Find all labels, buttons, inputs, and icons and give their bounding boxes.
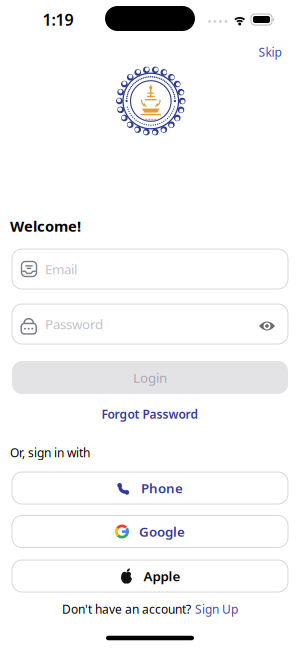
staticText: Apple xyxy=(143,567,180,585)
button[interactable]: Skip xyxy=(248,41,292,63)
staticText: Sign Up xyxy=(195,601,238,617)
staticText: Login xyxy=(133,369,167,386)
button[interactable]: Apple xyxy=(12,560,288,592)
button[interactable]: Phone xyxy=(12,472,288,504)
staticText: Password xyxy=(45,315,103,333)
staticText: Skip xyxy=(258,44,281,60)
staticText: Or, sign in with xyxy=(10,444,90,460)
button[interactable]: Show password xyxy=(255,314,279,338)
staticText: Don't have an account? xyxy=(62,601,191,617)
button[interactable]: Forgot Password xyxy=(101,404,198,424)
staticText: Email xyxy=(45,260,77,278)
staticText: Forgot Password xyxy=(101,406,198,422)
staticText: 1:19 xyxy=(42,9,73,30)
button[interactable]: Google xyxy=(12,515,288,547)
staticText: Welcome! xyxy=(10,216,81,236)
staticText: Google xyxy=(139,523,185,540)
staticText: Phone xyxy=(141,479,183,497)
button[interactable]: Sign Up xyxy=(195,601,238,617)
button[interactable]: Login xyxy=(12,361,288,394)
